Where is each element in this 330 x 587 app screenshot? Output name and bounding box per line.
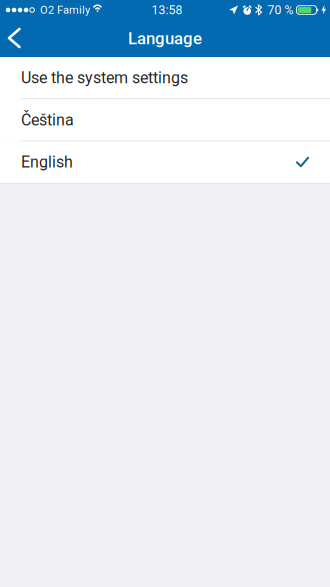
staticText: Use the system settings	[21, 68, 188, 87]
staticText: English	[21, 153, 73, 172]
staticText: Language	[128, 29, 202, 48]
staticText: O2 Family	[40, 3, 90, 16]
button[interactable]: English	[0, 141, 330, 184]
staticText: 70 %	[267, 3, 293, 17]
button[interactable]: Back	[0, 20, 32, 57]
button[interactable]: Use the system settings	[0, 57, 330, 99]
staticText: 13:58	[151, 3, 182, 17]
staticText: Čeština	[21, 111, 74, 129]
button[interactable]: Čeština	[0, 99, 330, 141]
